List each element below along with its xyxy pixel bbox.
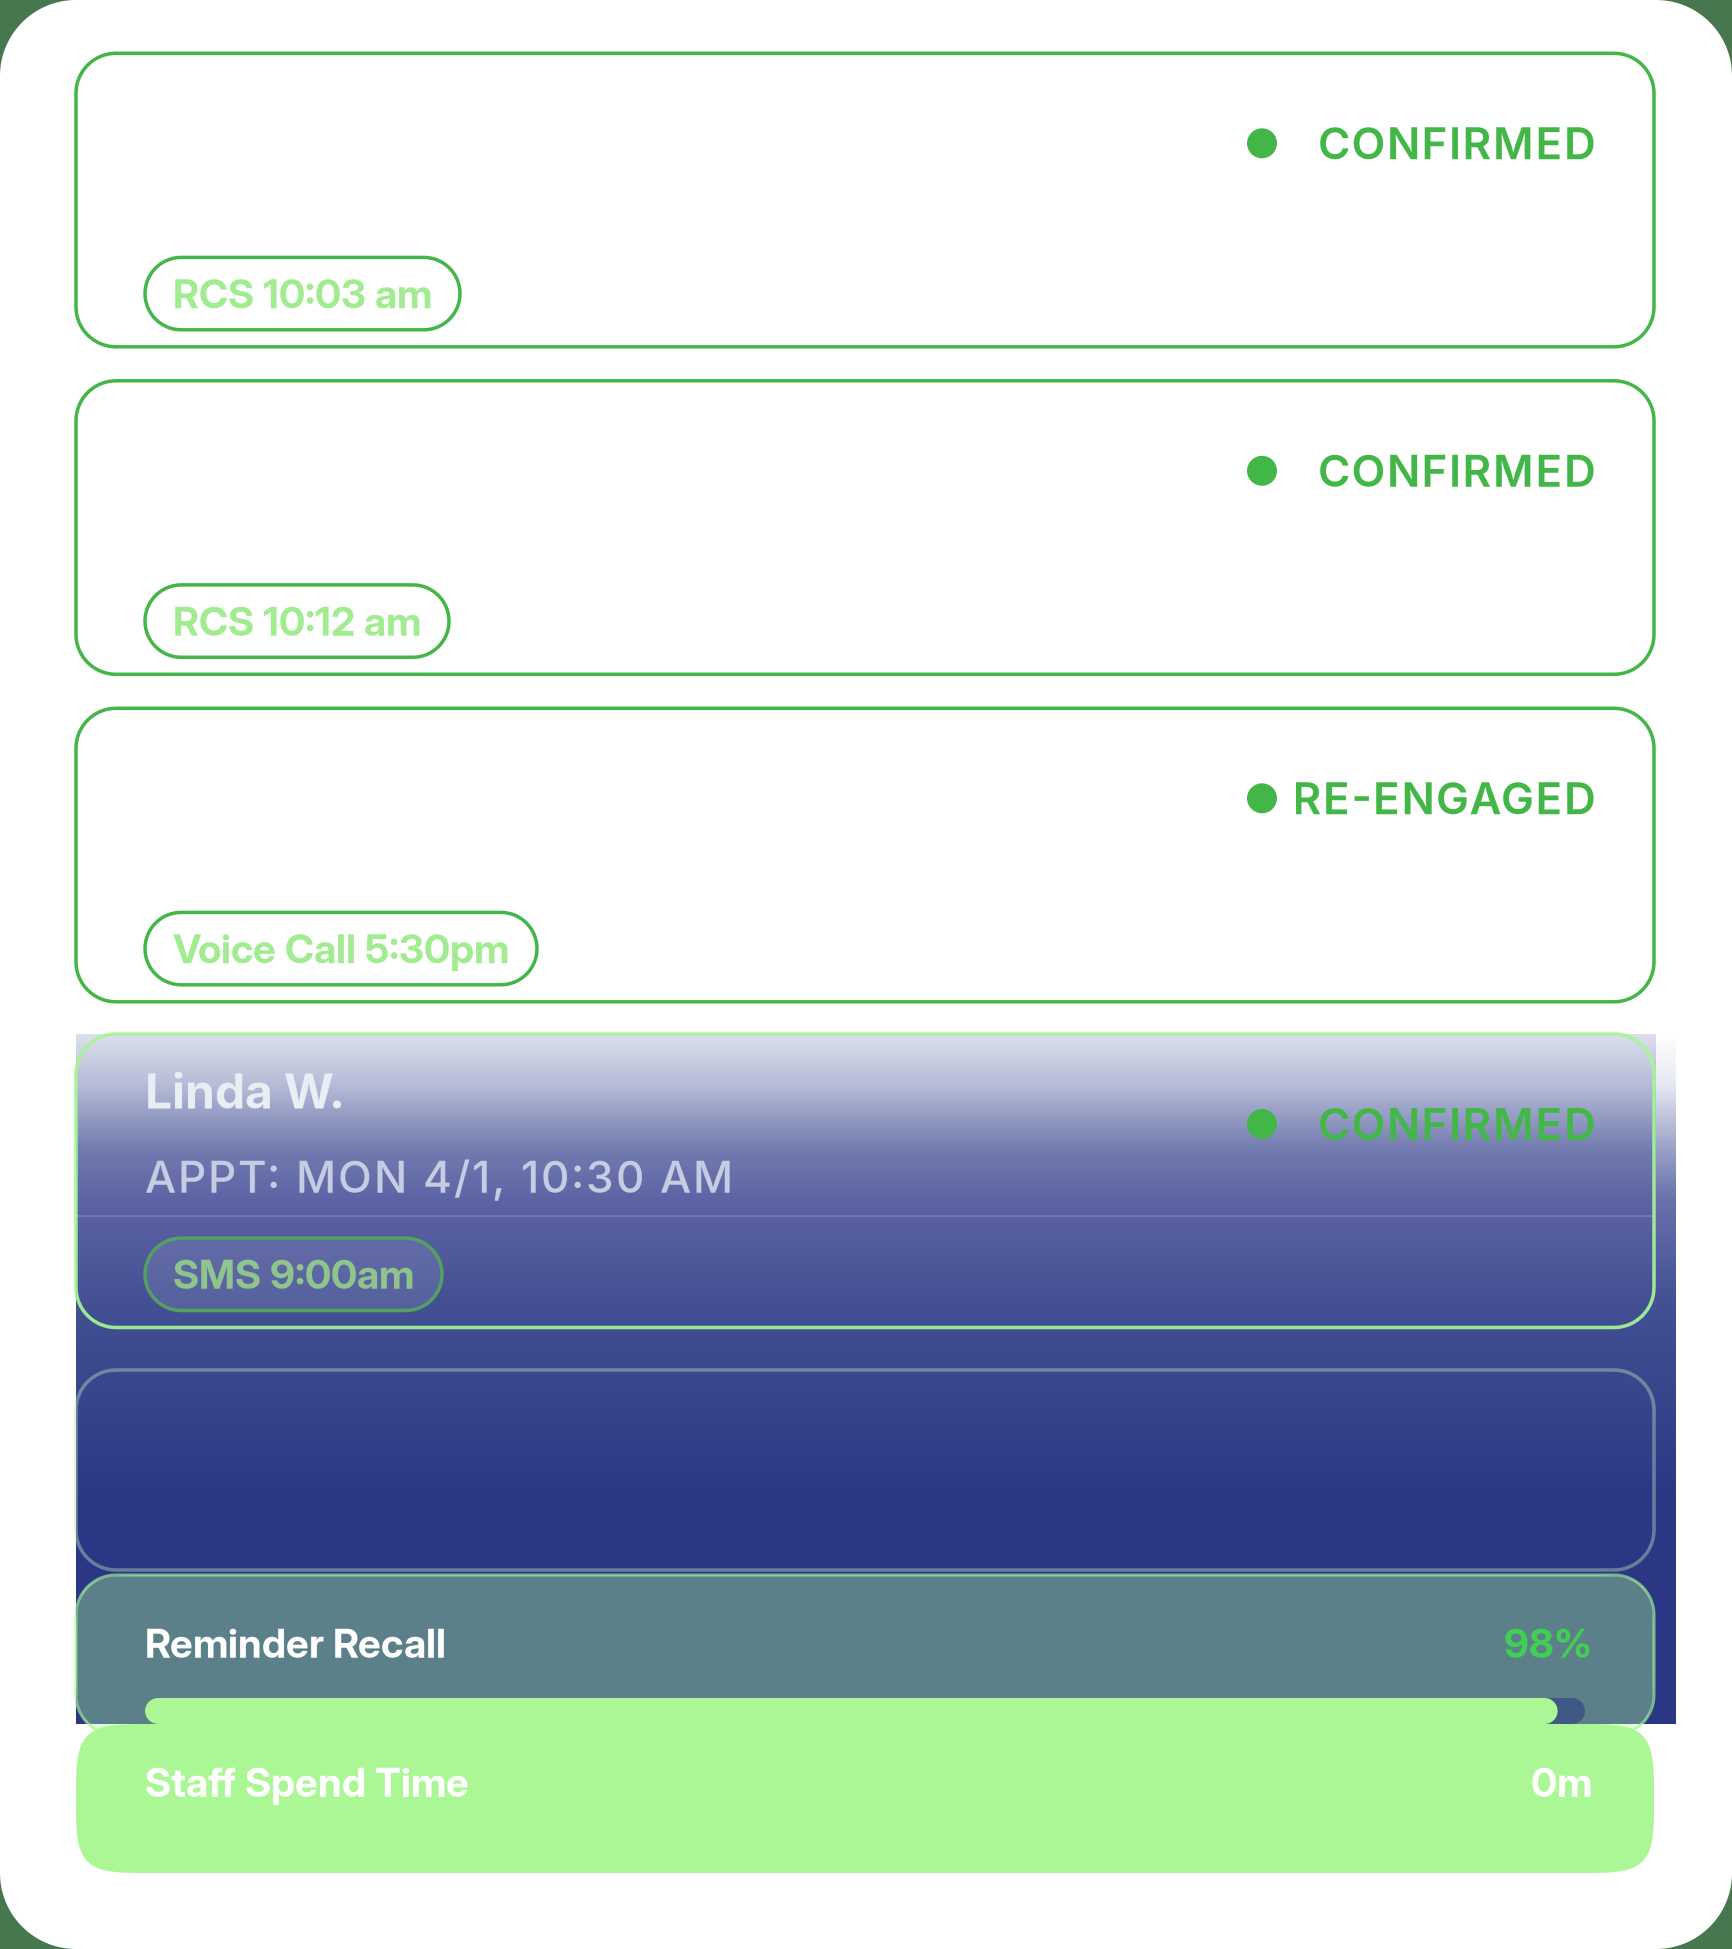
button[interactable]: Sarah V. <box>76 381 1654 674</box>
button[interactable] <box>76 1370 1654 1570</box>
staticText: Linda W. <box>145 1062 345 1120</box>
staticText: 0m <box>1531 1758 1592 1806</box>
button[interactable]: Reminder Recall <box>76 1575 1654 1735</box>
staticText: CONFIRMED <box>1318 444 1596 497</box>
staticText: Voice Call 5:30pm <box>173 924 509 973</box>
button[interactable]: Linda W. <box>76 1034 1654 1327</box>
button[interactable]: Florence C. <box>76 53 1654 347</box>
staticText: RCS 10:12 am <box>173 597 421 645</box>
staticText: Reminder Recall <box>145 1619 446 1667</box>
button[interactable]: Staff Spend Time <box>76 1724 1654 1873</box>
staticText: SMS 9:00am <box>173 1250 414 1298</box>
staticText: RE-ENGAGED <box>1292 772 1596 825</box>
staticText: 98% <box>1504 1619 1592 1667</box>
button[interactable]: James R. <box>76 708 1654 1002</box>
staticText: CONFIRMED <box>1318 117 1596 170</box>
staticText: RCS 10:03 am <box>173 269 432 318</box>
staticText: APPT: MON 4/1, 10:30 AM <box>145 1150 733 1203</box>
staticText: CONFIRMED <box>1318 1097 1596 1151</box>
staticText: Staff Spend Time <box>145 1758 469 1806</box>
